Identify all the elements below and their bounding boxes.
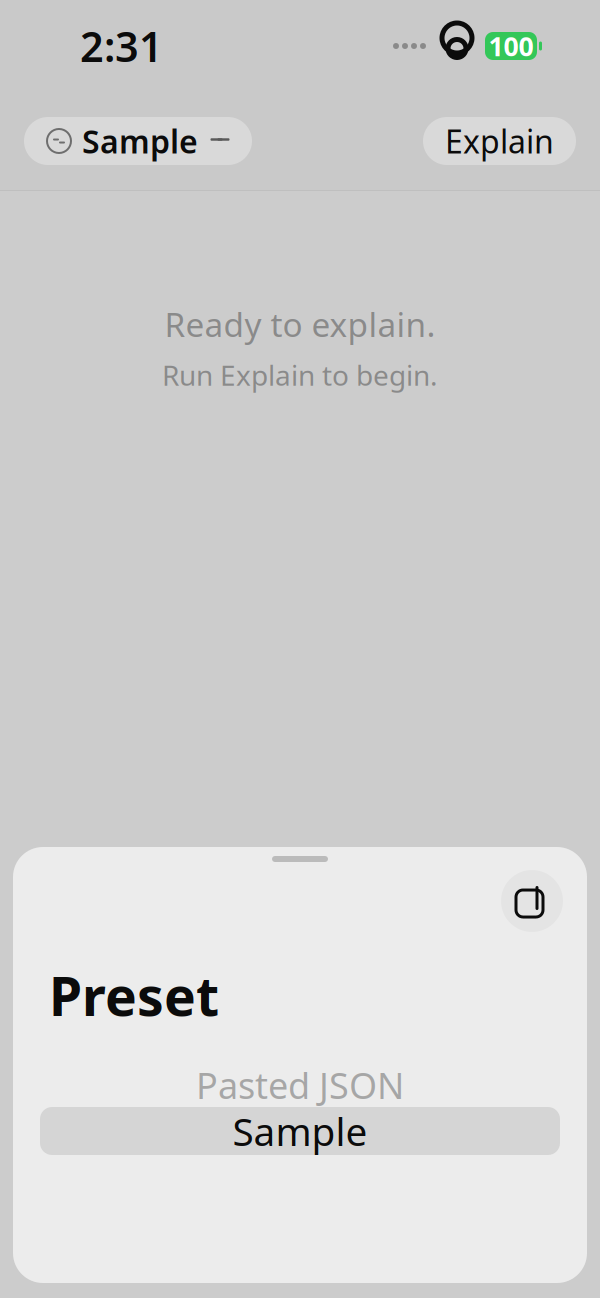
staticText: Run Explain to begin. (162, 356, 438, 393)
staticText: Preset (49, 960, 219, 1031)
staticText: Sample (82, 120, 198, 162)
button[interactable]: Explain (423, 117, 576, 165)
button[interactable]: Sample (24, 117, 252, 165)
staticText: Explain (445, 120, 554, 162)
button[interactable]: Edit preset (501, 870, 563, 932)
staticText: 100 (488, 28, 533, 64)
staticText: Ready to explain. (164, 302, 435, 346)
button[interactable]: Pasted JSON (40, 1063, 560, 1107)
button[interactable]: Sample (40, 1107, 560, 1155)
staticText: Sample (232, 1105, 367, 1157)
staticText: Pasted JSON (196, 1061, 404, 1109)
staticText: 2:31 (80, 19, 163, 73)
